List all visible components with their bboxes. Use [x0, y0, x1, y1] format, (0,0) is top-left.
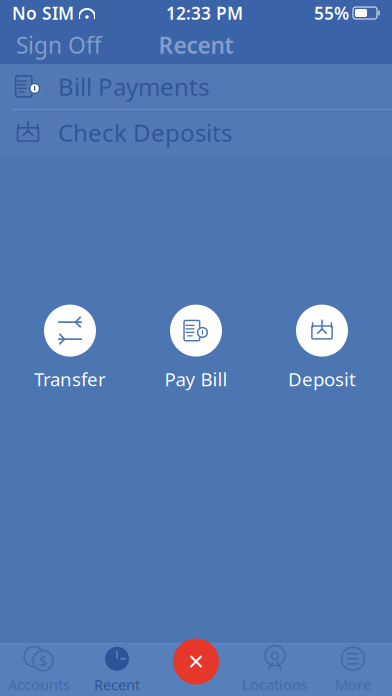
- staticText: More: [335, 675, 371, 694]
- staticText: Check Deposits: [58, 117, 232, 148]
- button[interactable]: Locations: [236, 643, 314, 696]
- button[interactable]: Bill Payments: [0, 64, 392, 109]
- button[interactable]: Close menu: [170, 635, 222, 687]
- staticText: Deposit: [288, 367, 356, 391]
- staticText: Recent: [158, 30, 233, 60]
- button[interactable]: Deposit: [272, 305, 372, 391]
- staticText: Locations: [242, 675, 308, 694]
- button[interactable]: Sign Off: [0, 26, 118, 64]
- staticText: Recent: [94, 675, 140, 694]
- staticText: Accounts: [8, 675, 70, 694]
- staticText: 55%: [314, 1, 349, 24]
- button[interactable]: Transfer: [20, 305, 120, 391]
- button[interactable]: Check Deposits: [0, 110, 392, 155]
- button[interactable]: $: [0, 643, 78, 696]
- staticText: 12:33 PM: [166, 1, 243, 24]
- staticText: $: [39, 651, 47, 670]
- staticText: No SIM: [12, 1, 74, 24]
- staticText: Bill Payments: [58, 71, 209, 102]
- button[interactable]: More: [314, 643, 392, 696]
- button[interactable]: Pay Bill: [146, 305, 246, 391]
- staticText: Transfer: [34, 367, 106, 391]
- staticText: Pay Bill: [164, 367, 227, 391]
- staticText: Sign Off: [16, 30, 102, 60]
- button[interactable]: Recent: [78, 643, 156, 696]
